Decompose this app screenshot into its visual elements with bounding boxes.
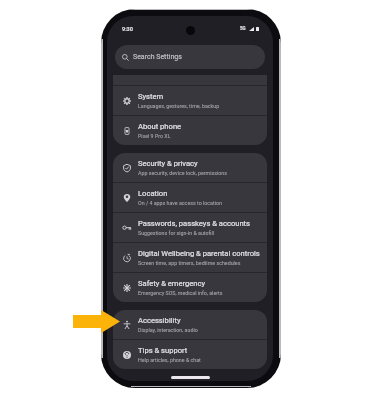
staticText: About phone — [138, 122, 182, 131]
staticText: Passwords, passkeys & accounts — [138, 219, 251, 228]
staticText: Security & privacy — [138, 159, 198, 168]
staticText: Help articles, phone & chat — [138, 357, 201, 363]
staticText: Suggestions for sign-in & autofill — [138, 230, 215, 236]
staticText: Search Settings — [133, 53, 182, 61]
button[interactable]: Security & privacy — [113, 153, 267, 182]
staticText: On / 4 apps have access to location — [138, 200, 222, 206]
button[interactable]: System — [113, 86, 267, 115]
staticText: System — [138, 92, 164, 101]
staticText: Safety & emergency — [138, 279, 206, 288]
staticText: Location — [138, 189, 168, 198]
staticText: App security, device lock, permissions — [138, 170, 227, 176]
staticText: Display, interaction, audio — [138, 327, 198, 333]
button[interactable]: Search Settings — [115, 45, 265, 69]
staticText: 5G — [240, 26, 246, 31]
button[interactable]: Safety & emergency — [113, 273, 267, 302]
staticText: Pixel 9 Pro XL — [138, 133, 171, 139]
staticText: Tips & support — [138, 346, 188, 355]
button[interactable]: Accessibility — [113, 310, 267, 339]
button[interactable]: Location — [113, 183, 267, 212]
staticText: Digital Wellbeing & parental controls — [138, 249, 260, 258]
button[interactable]: Passwords, passkeys & accounts — [113, 213, 267, 242]
button[interactable]: Tips & support — [113, 340, 267, 369]
button[interactable]: About phone — [113, 116, 267, 145]
staticText: 9:30 — [122, 26, 133, 32]
staticText: Languages, gestures, time, backup — [138, 103, 220, 109]
button[interactable]: Digital Wellbeing & parental controls — [113, 243, 267, 272]
staticText: Emergency SOS, medical info, alerts — [138, 290, 223, 296]
staticText: Screen time, app timers, bedtime schedul… — [138, 260, 241, 266]
other: Pointer to Accessibility — [73, 310, 120, 333]
staticText: Accessibility — [138, 316, 181, 325]
